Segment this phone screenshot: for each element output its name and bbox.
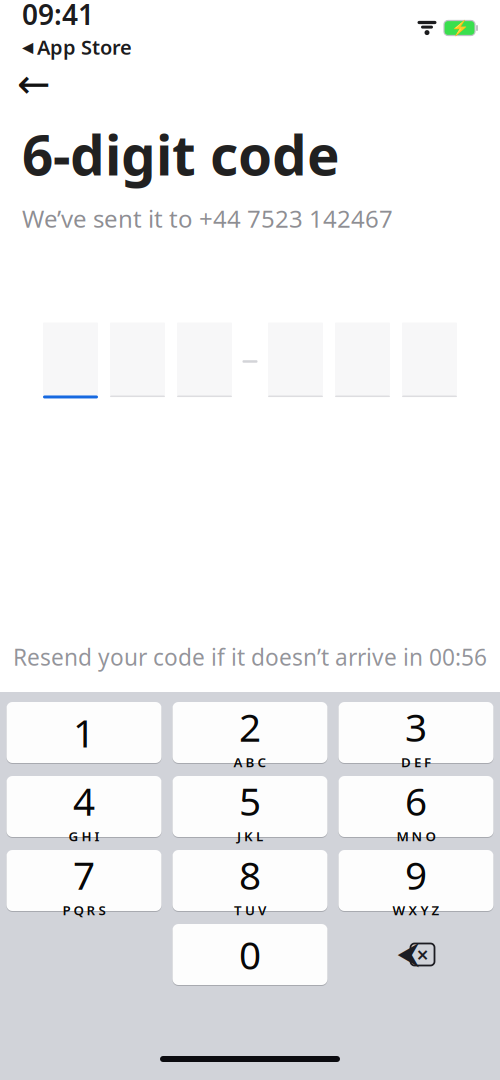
staticText: 8 [239, 849, 261, 900]
staticText: P Q R S [62, 901, 105, 919]
staticText: G H I [68, 827, 99, 845]
staticText: 09:41 [22, 0, 94, 33]
staticText: ⮜ [397, 939, 419, 969]
staticText: Resend your code if it doesn’t arrive in… [13, 642, 487, 672]
button[interactable]: 2 [172, 701, 327, 764]
staticText: 9 [405, 849, 427, 900]
button[interactable]: 4 [6, 775, 161, 838]
staticText: 1 [73, 707, 95, 758]
button[interactable]: Delete [338, 923, 493, 986]
staticText: App Store [37, 34, 132, 60]
button[interactable]: 8 [172, 849, 327, 912]
staticText: W X Y Z [392, 901, 439, 919]
staticText: 6 [405, 775, 427, 826]
staticText: 0 [239, 929, 261, 980]
staticText: 5 [239, 775, 261, 826]
staticText: 3 [405, 701, 427, 752]
staticText: 6-digit code [22, 118, 340, 191]
button[interactable]: Back [12, 64, 56, 104]
button[interactable]: 0 [172, 923, 327, 986]
staticText: We’ve sent it to +44 7523 142467 [22, 203, 393, 234]
staticText: × [416, 940, 428, 969]
staticText: ← [17, 61, 51, 107]
staticText: ◀ [22, 39, 33, 55]
staticText: J K L [237, 827, 263, 845]
button[interactable]: 7 [6, 849, 161, 912]
button[interactable]: 9 [338, 849, 493, 912]
staticText: T U V [234, 901, 266, 919]
staticText: 2 [239, 701, 261, 752]
button[interactable]: 3 [338, 701, 493, 764]
button[interactable]: 6 [338, 775, 493, 838]
staticText: D E F [401, 753, 431, 771]
staticText: ⚡ [450, 20, 468, 36]
staticText: 4 [73, 775, 95, 826]
button[interactable]: 5 [172, 775, 327, 838]
staticText: A B C [233, 753, 266, 771]
button[interactable]: 1 [6, 701, 161, 764]
staticText: M N O [396, 827, 435, 845]
staticText: 7 [73, 849, 95, 900]
